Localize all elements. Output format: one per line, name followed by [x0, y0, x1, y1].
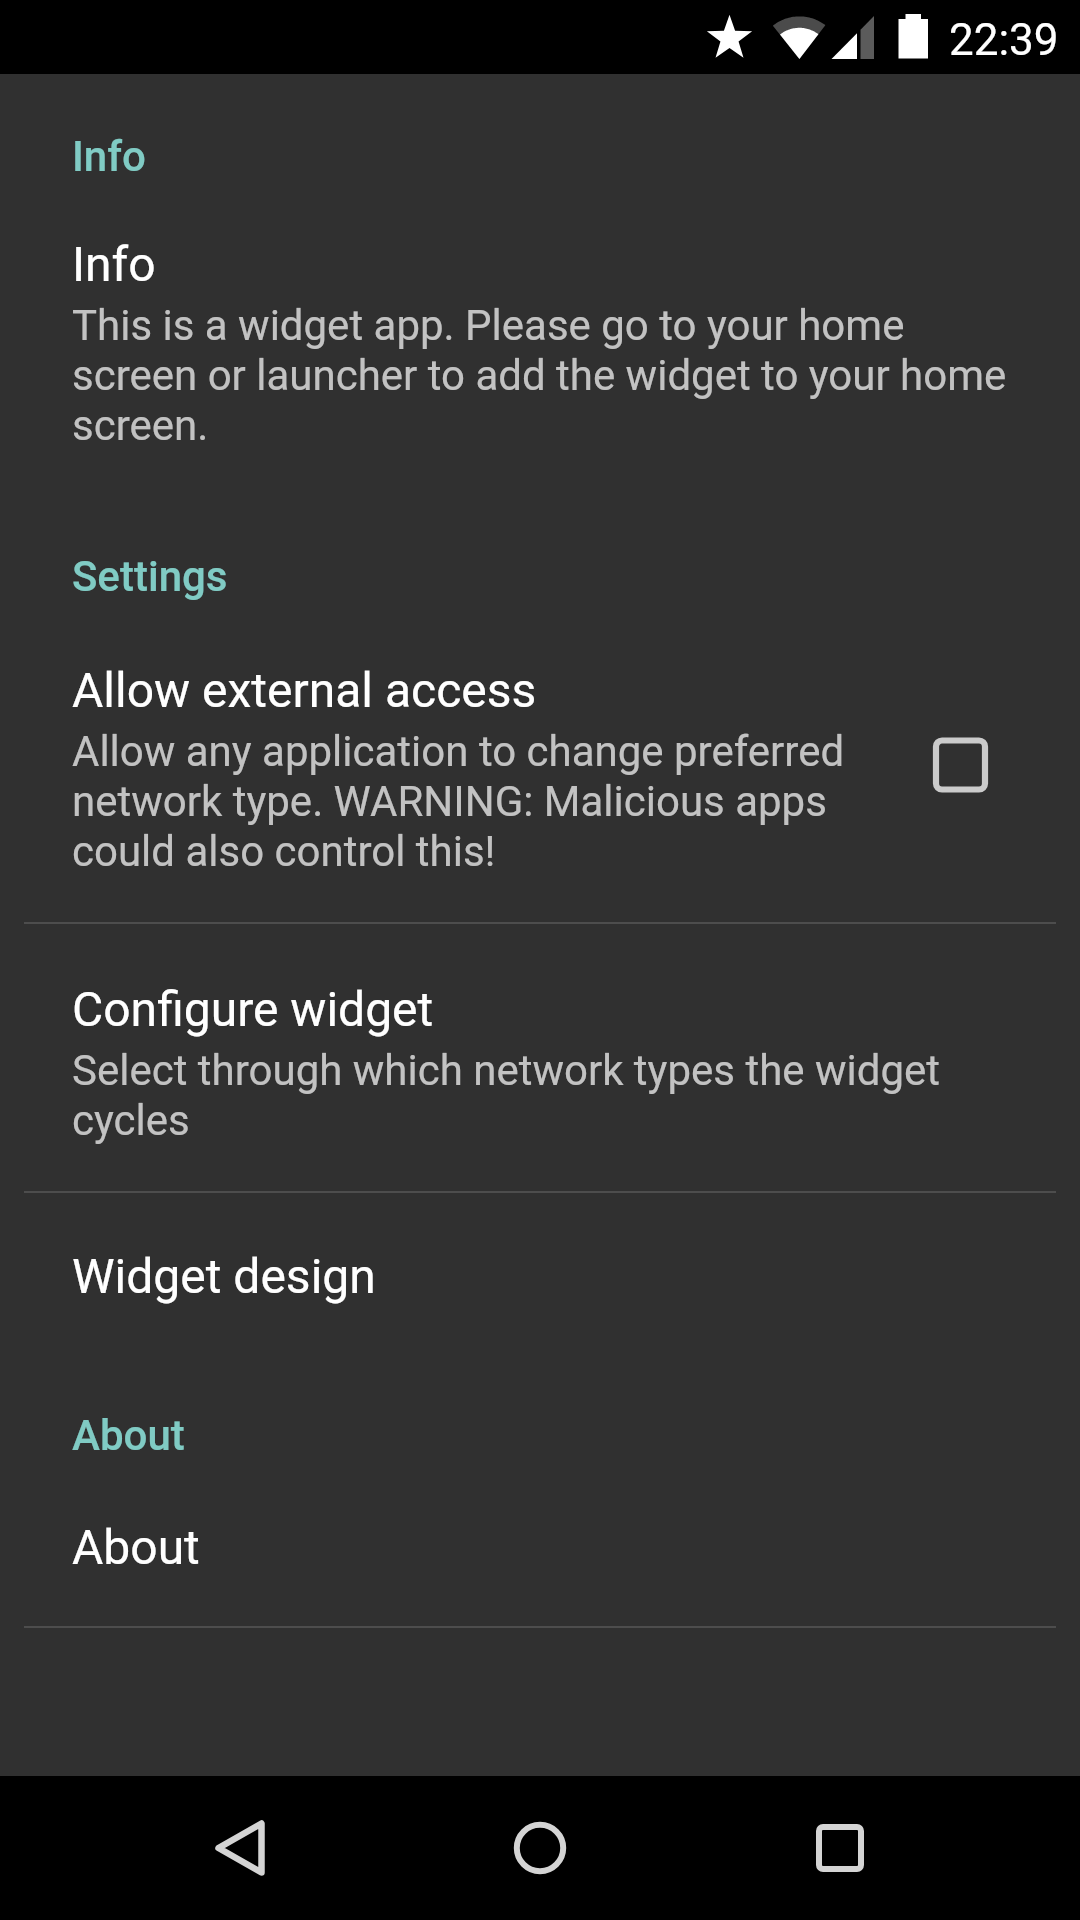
button[interactable]: Home — [480, 1788, 600, 1908]
staticText: About — [72, 1411, 185, 1460]
button[interactable]: Configure widget — [0, 924, 1080, 1191]
button[interactable]: Allow external access — [864, 721, 1056, 817]
staticText: Allow external access — [72, 662, 537, 718]
staticText: About — [72, 1519, 200, 1575]
staticText: This is a widget app. Please go to your … — [72, 301, 1017, 450]
staticText: Settings — [72, 552, 228, 601]
staticText: Info — [72, 132, 147, 181]
button[interactable]: Widget design — [0, 1193, 1080, 1350]
button[interactable]: Back — [180, 1788, 300, 1908]
button[interactable]: Recent apps — [780, 1788, 900, 1908]
button[interactable]: Info — [0, 181, 1080, 496]
staticText: Select through which network types the w… — [72, 1046, 1017, 1145]
staticText: Info — [72, 236, 156, 292]
button[interactable]: Allow external access — [0, 601, 1080, 922]
button[interactable]: About — [0, 1460, 1080, 1626]
staticText: Configure widget — [72, 981, 434, 1037]
staticText: 22:39 — [949, 14, 1059, 66]
staticText: Allow any application to change preferre… — [72, 727, 864, 876]
staticText: Widget design — [72, 1248, 376, 1304]
